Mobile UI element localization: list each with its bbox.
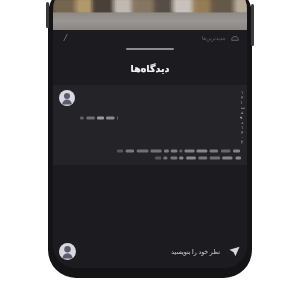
button[interactable]: Send bbox=[227, 244, 241, 258]
button[interactable]: نظر خود را بنویسید bbox=[169, 245, 222, 257]
staticText: نظر خود را بنویسید bbox=[171, 247, 220, 255]
button[interactable]: ۱۴ اسفند ۱۴۰۲ bbox=[53, 85, 247, 165]
staticText: جدیدترین‌ها bbox=[201, 35, 226, 41]
button[interactable]: Back bbox=[60, 32, 71, 43]
staticText: دیدگاه‌ها bbox=[53, 63, 247, 74]
button[interactable]: Sort comments bbox=[229, 32, 240, 43]
